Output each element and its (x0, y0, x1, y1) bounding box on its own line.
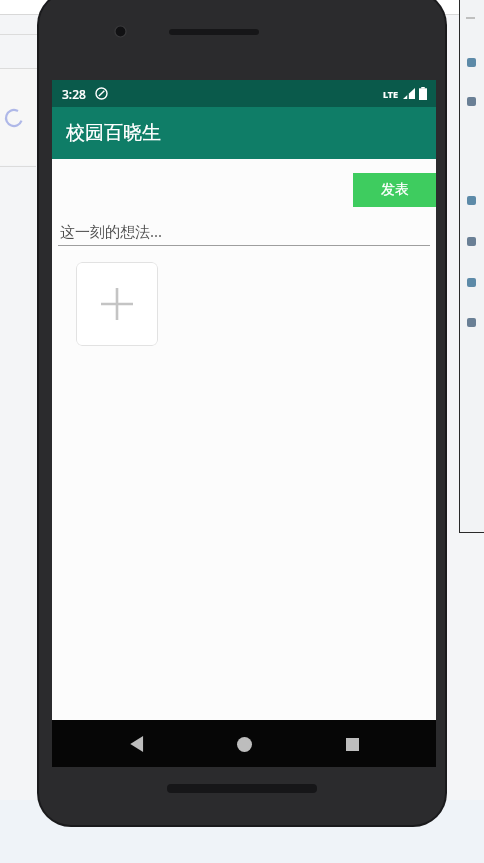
button[interactable]: Back (114, 721, 160, 767)
button[interactable]: Home (221, 721, 267, 767)
button[interactable]: 这一刻的想法... (58, 221, 430, 246)
button[interactable]: 发表 (353, 173, 436, 207)
staticText: LTE (383, 88, 399, 100)
staticText: 这一刻的想法... (60, 221, 163, 241)
staticText: 3:28 (62, 86, 86, 102)
staticText: 发表 (381, 181, 409, 199)
staticText: 校园百晓生 (66, 121, 161, 145)
button[interactable]: Recents (329, 721, 375, 767)
button[interactable]: Add photo (76, 262, 158, 346)
